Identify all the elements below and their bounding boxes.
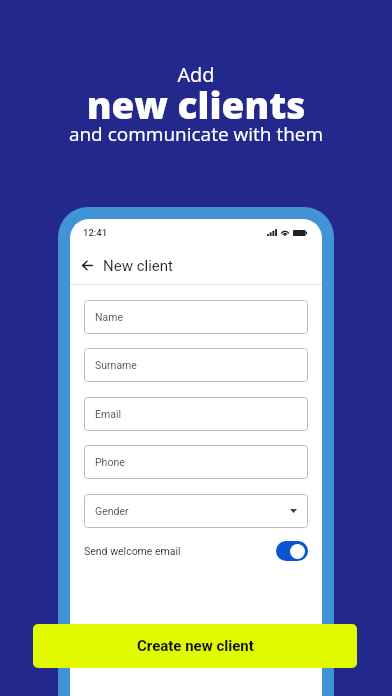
staticText: Name <box>95 311 123 323</box>
staticText: 12:41 <box>83 227 108 238</box>
staticText: Surname <box>95 359 137 371</box>
staticText: Create new client <box>137 637 254 655</box>
button[interactable]: Back <box>73 251 102 280</box>
staticText: Add <box>0 61 392 88</box>
staticText: Phone <box>95 456 125 468</box>
button[interactable]: Name <box>84 300 308 334</box>
staticText: New client <box>103 257 173 275</box>
staticText: and communicate with them <box>0 121 392 147</box>
button[interactable]: Surname <box>84 348 308 382</box>
staticText: Send welcome email <box>84 545 181 557</box>
button[interactable]: Email <box>84 397 308 431</box>
staticText: Email <box>95 408 121 420</box>
staticText: new clients <box>0 79 392 129</box>
button[interactable]: Phone <box>84 445 308 479</box>
button[interactable]: Gender <box>84 494 308 528</box>
button[interactable]: Send welcome email <box>84 539 308 563</box>
staticText: Gender <box>95 505 129 517</box>
button[interactable]: Create new client <box>33 624 357 668</box>
